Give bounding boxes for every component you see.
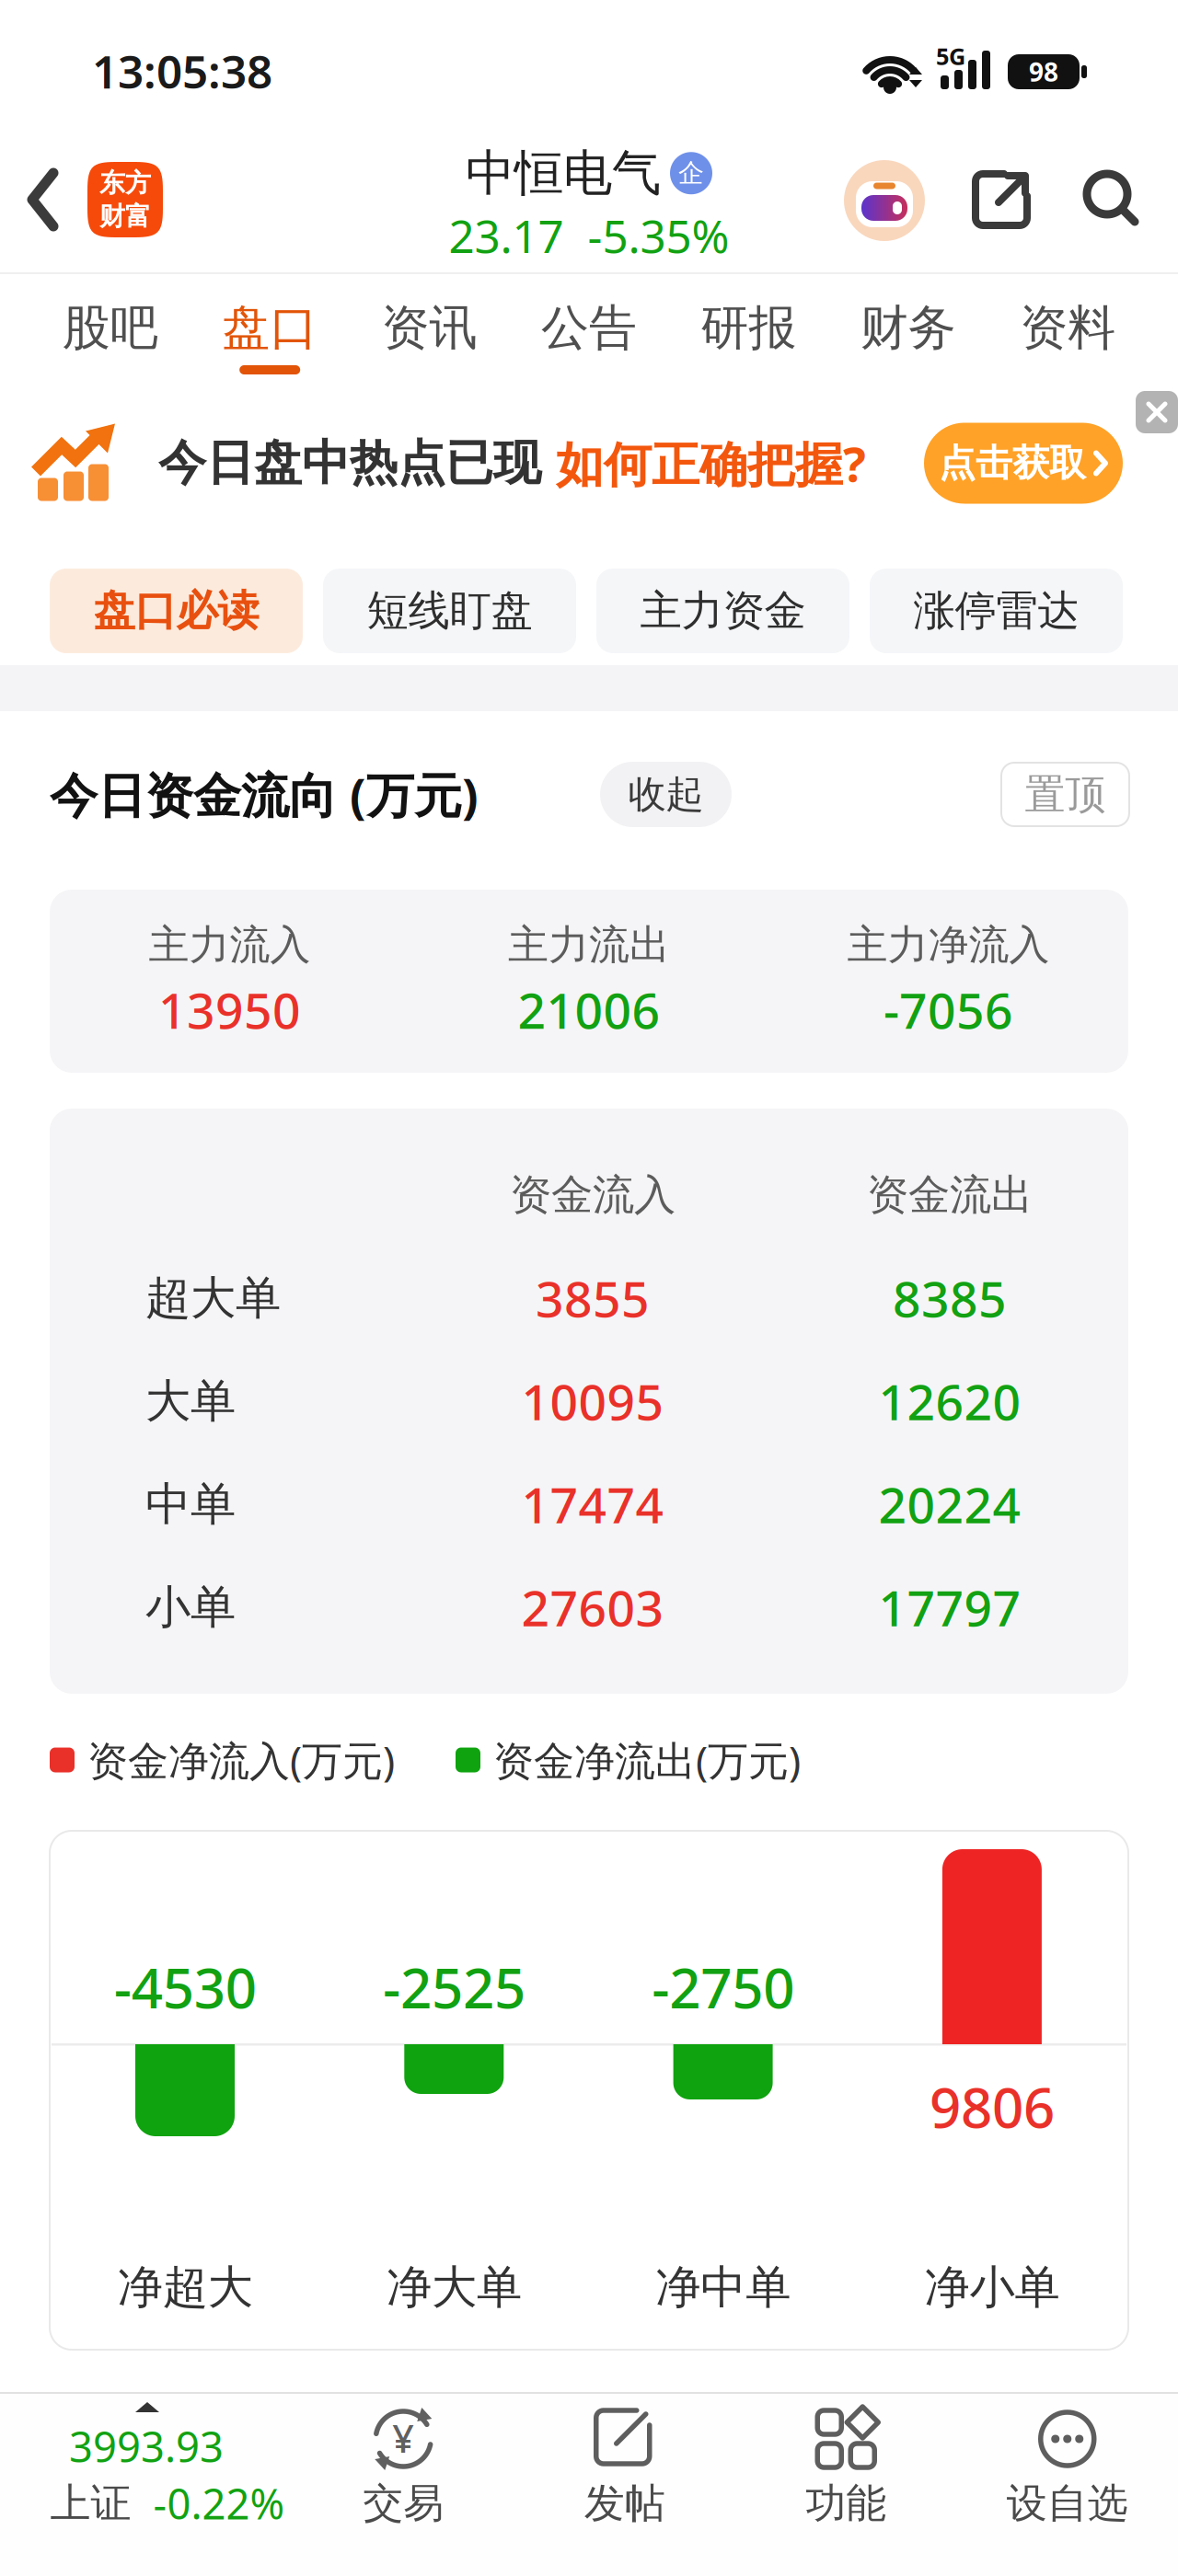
staticText: 盘口: [222, 299, 318, 357]
button[interactable]: Share: [971, 169, 1032, 230]
staticText: 资金净流出(万元): [493, 1733, 801, 1787]
staticText: 财务: [860, 299, 956, 357]
button[interactable]: 盘口必读: [50, 569, 303, 653]
staticText: 13:05:38: [92, 41, 272, 101]
staticText: 净小单: [925, 2260, 1060, 2315]
staticText: 设自选: [1007, 2478, 1128, 2528]
button[interactable]: 发帖: [514, 2392, 735, 2576]
staticText: 23.17: [449, 205, 564, 265]
staticText: 27603: [521, 1575, 664, 1640]
staticText: 超大单: [145, 1270, 281, 1326]
staticText: 涨停雷达: [913, 585, 1079, 637]
staticText: 收起: [628, 771, 704, 818]
staticText: 置顶: [1025, 770, 1106, 819]
button[interactable]: Back: [26, 171, 61, 228]
staticText: 资金净流入(万元): [87, 1733, 395, 1787]
staticText: 13950: [158, 977, 301, 1042]
staticText: 主力净流入: [847, 920, 1050, 970]
staticText: 股吧: [62, 299, 158, 357]
button[interactable]: 资料: [988, 274, 1148, 382]
button[interactable]: 助手: [844, 160, 925, 241]
button[interactable]: 盘口: [190, 274, 350, 382]
staticText: 今日盘中热点已现: [158, 434, 541, 493]
staticText: 点击获取: [939, 441, 1086, 486]
staticText: 短线盯盘: [367, 585, 532, 637]
button[interactable]: 关闭: [1136, 391, 1178, 433]
staticText: -2525: [383, 1950, 525, 2024]
staticText: 东方: [99, 167, 151, 199]
staticText: 净大单: [387, 2260, 522, 2315]
button[interactable]: 东方财富: [87, 162, 163, 237]
staticText: -5.35%: [588, 205, 729, 265]
button[interactable]: 置顶: [1001, 763, 1129, 826]
staticText: -7056: [884, 977, 1013, 1042]
button[interactable]: 主力资金: [596, 569, 849, 653]
staticText: 20224: [878, 1472, 1021, 1537]
staticText: -0.22%: [153, 2476, 285, 2531]
staticText: 大单: [145, 1373, 236, 1429]
staticText: 3855: [536, 1266, 650, 1331]
button[interactable]: 短线盯盘: [323, 569, 576, 653]
staticText: 98: [1029, 55, 1058, 89]
staticText: 9806: [930, 2070, 1055, 2143]
staticText: 发帖: [584, 2478, 665, 2528]
staticText: 12620: [878, 1369, 1021, 1434]
staticText: 17797: [878, 1575, 1021, 1640]
staticText: 资金流入: [510, 1170, 676, 1221]
staticText: 8385: [893, 1266, 1007, 1331]
staticText: 资金流出: [867, 1170, 1033, 1221]
staticText: 主力流入: [149, 920, 311, 970]
staticText: 中单: [145, 1476, 236, 1532]
staticText: 小单: [145, 1579, 236, 1635]
staticText: 交易: [363, 2478, 444, 2528]
button[interactable]: ¥: [293, 2392, 514, 2576]
staticText: 上证: [50, 2478, 131, 2528]
staticText: -4530: [114, 1950, 256, 2024]
button[interactable]: 涨停雷达: [870, 569, 1123, 653]
staticText: 企: [678, 157, 704, 189]
button[interactable]: 功能: [735, 2392, 957, 2576]
button[interactable]: 今日盘中热点已现: [0, 382, 1178, 534]
staticText: 公告: [541, 299, 637, 357]
staticText: 资讯: [382, 299, 477, 357]
staticText: 5G: [936, 41, 965, 72]
staticText: ¥: [392, 2413, 414, 2463]
staticText: 财富: [99, 201, 151, 232]
button[interactable]: 财务: [828, 274, 988, 382]
staticText: 今日资金流向 (万元): [50, 763, 479, 826]
staticText: 21006: [518, 977, 660, 1042]
staticText: 如何正确把握?: [556, 431, 866, 495]
staticText: 主力流出: [508, 920, 670, 970]
button[interactable]: 公告: [509, 274, 669, 382]
staticText: 盘口必读: [93, 585, 259, 637]
staticText: -2750: [652, 1950, 794, 2024]
staticText: 17474: [521, 1472, 664, 1537]
button[interactable]: 设自选: [957, 2392, 1178, 2576]
button[interactable]: 资讯: [350, 274, 509, 382]
button[interactable]: 研报: [669, 274, 828, 382]
staticText: 功能: [805, 2478, 886, 2528]
button[interactable]: Search: [1081, 169, 1142, 230]
staticText: 3993.93: [69, 2419, 224, 2474]
staticText: 研报: [701, 299, 796, 357]
staticText: 10095: [521, 1369, 664, 1434]
staticText: 主力资金: [640, 585, 806, 637]
button[interactable]: 股吧: [30, 274, 190, 382]
button[interactable]: 上证指数: [0, 2392, 293, 2576]
staticText: 净超大: [118, 2260, 253, 2315]
staticText: 净中单: [655, 2260, 791, 2315]
button[interactable]: 收起: [600, 762, 732, 827]
staticText: 资料: [1020, 299, 1116, 357]
staticText: 中恒电气: [466, 143, 661, 203]
